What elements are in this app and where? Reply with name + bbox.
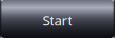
button[interactable]: Start xyxy=(0,0,115,38)
staticText: Start xyxy=(42,11,72,29)
